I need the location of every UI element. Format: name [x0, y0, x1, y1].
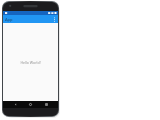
button[interactable]: App	[3, 15, 58, 23]
button[interactable]: More options	[52, 17, 57, 22]
button[interactable]: Recent apps	[43, 101, 50, 108]
staticText: Hello World!	[20, 60, 41, 65]
button[interactable]: Back	[12, 101, 19, 108]
staticText: App	[5, 17, 13, 22]
button[interactable]: Home	[27, 101, 34, 108]
